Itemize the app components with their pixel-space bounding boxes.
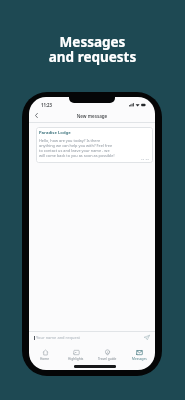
staticText: Hello, how are you today? Is there anyth… [39,138,115,158]
button[interactable]: Home [29,344,60,361]
button[interactable]: Messages [123,344,155,361]
staticText: Messages [132,357,147,361]
staticText: Your name and request [36,335,80,340]
staticText: Highlights [68,357,84,361]
staticText: Home [40,357,50,361]
button[interactable] [35,113,38,118]
button[interactable]: Travel guide [91,344,123,361]
staticText: Travel guide [98,357,117,361]
button[interactable]: Highlights [60,344,91,361]
staticText: 11:23 [141,159,150,160]
staticText: New message [29,113,155,119]
staticText: Messages and requests [0,33,185,66]
staticText: 11:23 [41,102,53,108]
button[interactable]: Your name and request [29,331,155,344]
staticText: Paradise Lodge [39,130,71,136]
button[interactable]: Paradise Lodge [36,127,153,163]
